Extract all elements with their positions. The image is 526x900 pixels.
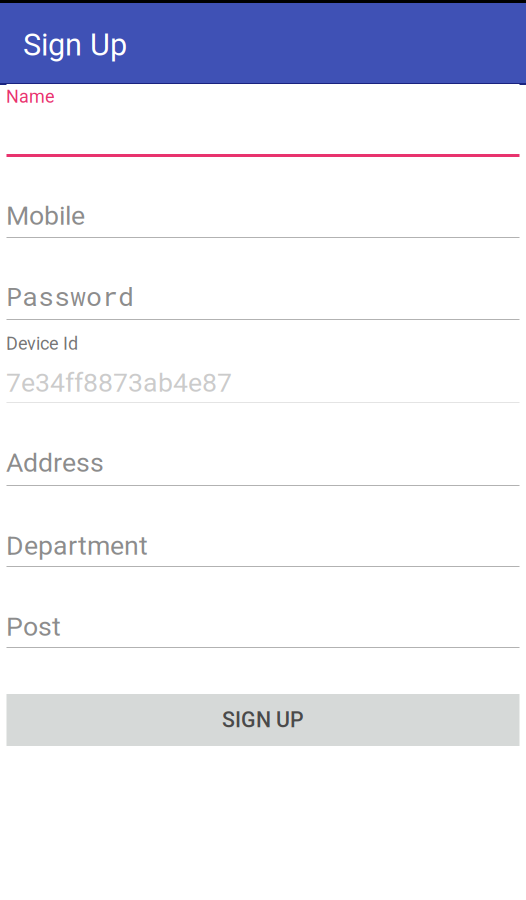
button[interactable]: SIGN UP <box>6 694 519 746</box>
button[interactable]: Mobile <box>6 200 519 238</box>
button[interactable]: Device Id <box>6 333 519 403</box>
button[interactable]: Post <box>6 611 519 648</box>
button[interactable]: Name <box>6 84 519 157</box>
staticText: Password <box>6 278 134 313</box>
staticText: Sign Up <box>23 27 127 63</box>
staticText: SIGN UP <box>222 707 304 732</box>
staticText: 7e34ff8873ab4e87 <box>6 367 232 398</box>
staticText: Post <box>6 611 61 642</box>
staticText: Mobile <box>6 200 85 231</box>
button[interactable]: Sign Up <box>0 5 526 85</box>
button[interactable]: Password <box>6 278 519 320</box>
button[interactable]: Department <box>6 530 519 567</box>
staticText: Device Id <box>6 333 78 354</box>
staticText: Address <box>6 447 104 478</box>
staticText: Department <box>6 530 148 561</box>
button[interactable]: Address <box>6 447 519 486</box>
staticText: Name <box>6 86 55 107</box>
